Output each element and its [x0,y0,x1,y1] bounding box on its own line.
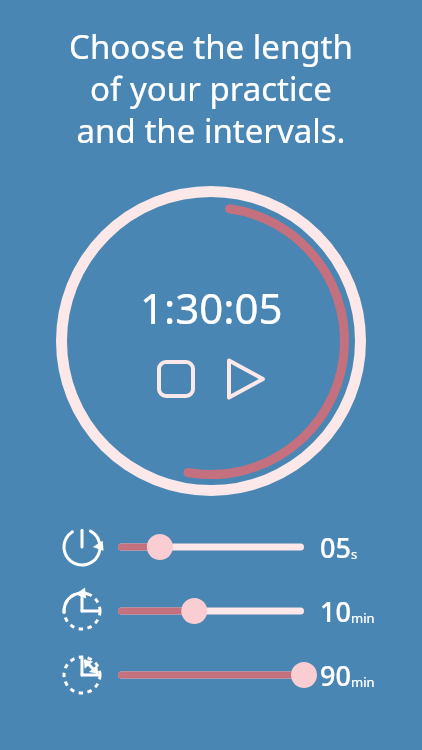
button[interactable]: 1:30:05 [55,185,367,497]
staticText: min [351,609,375,627]
other: Interval length [58,587,106,635]
other: Total practice length [58,651,106,699]
button[interactable]: Interval length [0,585,422,637]
button[interactable]: Play [221,354,271,404]
button[interactable]: Total practice length [0,649,422,701]
staticText: 1:30:05 [140,279,283,336]
staticText: 05 [320,529,351,566]
button[interactable]: Stop [153,356,199,402]
staticText: min [351,673,375,691]
staticText: s [351,545,358,563]
button[interactable]: Interval warning [0,521,422,573]
staticText: Choose the length of your practice and t… [18,24,404,153]
other: Interval warning [58,523,106,571]
staticText: 90 [320,657,351,694]
staticText: 10 [320,593,351,630]
